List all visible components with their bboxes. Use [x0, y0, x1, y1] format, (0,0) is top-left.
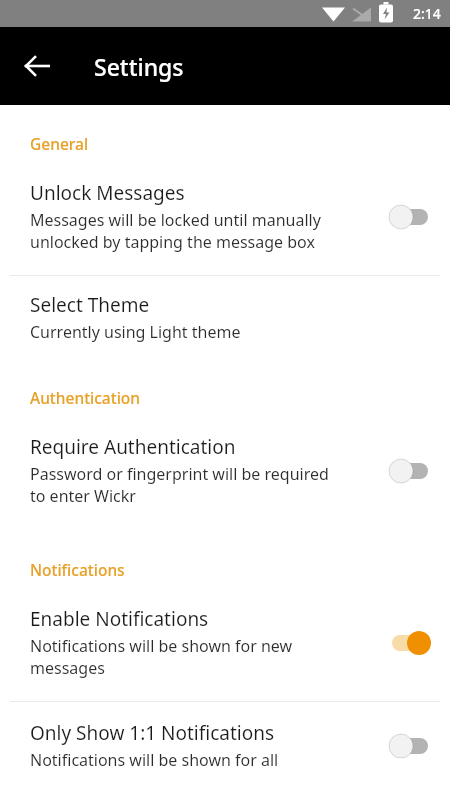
button[interactable]: Unlock Messages	[0, 154, 450, 275]
button[interactable]: Enable Notifications	[0, 580, 450, 701]
button[interactable]: Only Show 1:1 Notifications	[0, 702, 450, 781]
staticText: Messages will be locked until manually u…	[30, 209, 321, 253]
button[interactable]: Select Theme	[0, 276, 450, 361]
staticText: Password or fingerprint will be required…	[30, 463, 329, 507]
staticText: General	[30, 133, 89, 154]
staticText: Unlock Messages	[30, 180, 185, 206]
staticText: 2:14	[413, 4, 441, 23]
staticText: Only Show 1:1 Notifications	[30, 720, 275, 746]
staticText: Notifications will be shown for all	[30, 749, 279, 771]
staticText: Settings	[94, 51, 184, 82]
button[interactable]: Back	[13, 42, 61, 90]
staticText: Notifications	[30, 559, 125, 580]
staticText: Require Authentication	[30, 434, 236, 460]
staticText: Currently using Light theme	[30, 321, 241, 343]
button[interactable]: Require Authentication	[0, 408, 450, 529]
staticText: Authentication	[30, 387, 141, 408]
staticText: Select Theme	[30, 292, 150, 318]
staticText: Enable Notifications	[30, 606, 209, 632]
staticText: Notifications will be shown for new mess…	[30, 635, 293, 679]
